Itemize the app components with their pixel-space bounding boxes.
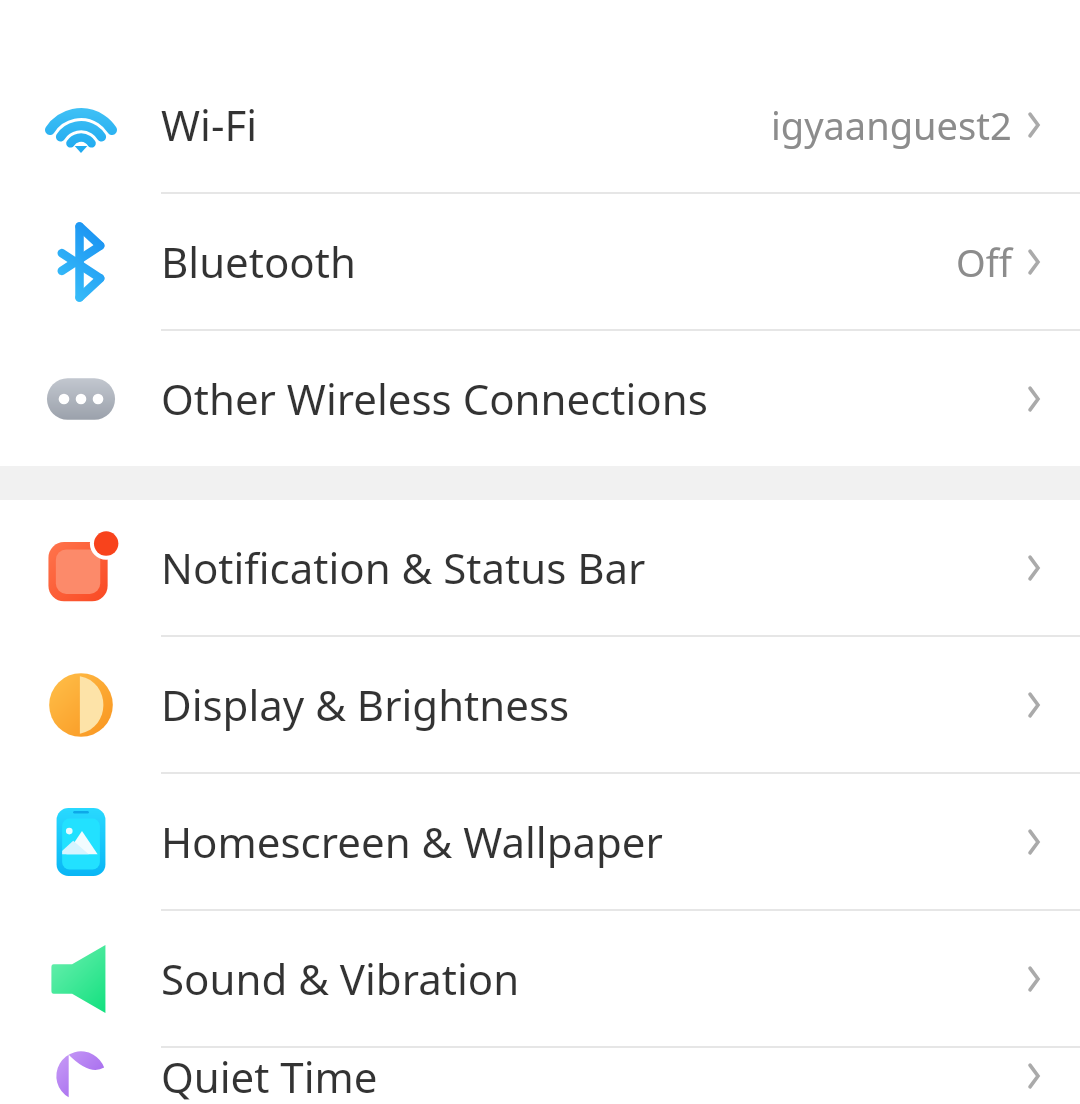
staticText: Quiet Time	[161, 1048, 378, 1104]
button[interactable]: Homescreen & Wallpaper	[0, 774, 1080, 911]
staticText: igyaanguest2	[771, 99, 1012, 151]
staticText: Off	[956, 236, 1012, 288]
button[interactable]: Wi-Fi	[0, 57, 1080, 194]
button[interactable]: Bluetooth	[0, 194, 1080, 331]
staticText: Display & Brightness	[161, 676, 570, 733]
button[interactable]: Display & Brightness	[0, 637, 1080, 774]
button[interactable]: Quiet Time	[0, 1048, 1080, 1104]
button[interactable]: Other Wireless Connections	[0, 331, 1080, 466]
staticText: Sound & Vibration	[161, 950, 520, 1007]
button[interactable]: Sound & Vibration	[0, 911, 1080, 1048]
staticText: Homescreen & Wallpaper	[161, 813, 663, 870]
staticText: Bluetooth	[161, 233, 356, 290]
staticText: Wi-Fi	[161, 96, 258, 153]
staticText: Other Wireless Connections	[161, 370, 708, 427]
button[interactable]: Notification & Status Bar	[0, 500, 1080, 637]
staticText: Notification & Status Bar	[161, 539, 646, 596]
